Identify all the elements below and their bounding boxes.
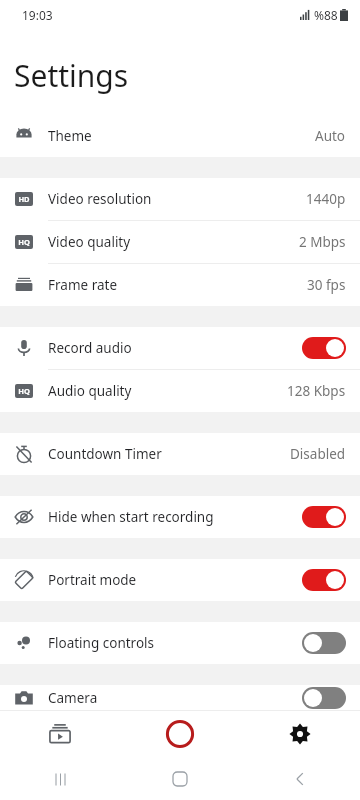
button[interactable]: Off: [302, 632, 346, 654]
staticText: %88: [314, 7, 338, 23]
button[interactable]: Recents: [36, 758, 84, 800]
staticText: HQ: [18, 237, 30, 247]
button[interactable]: Record: [154, 710, 206, 758]
button[interactable]: Off: [302, 687, 346, 709]
staticText: Theme: [48, 127, 315, 145]
staticText: 30 fps: [307, 276, 346, 294]
button[interactable]: Record audio: [0, 327, 360, 369]
staticText: 1440p: [306, 190, 346, 208]
button[interactable]: Back: [276, 758, 324, 800]
button[interactable]: Floating controls: [0, 622, 360, 664]
staticText: Audio quality: [48, 382, 287, 400]
staticText: Frame rate: [48, 276, 307, 294]
button[interactable]: Theme: [0, 115, 360, 157]
button[interactable]: On: [302, 506, 346, 528]
staticText: HQ: [18, 386, 30, 396]
staticText: HD: [18, 194, 30, 204]
staticText: Countdown Timer: [48, 445, 290, 463]
staticText: Camera: [48, 689, 302, 707]
button[interactable]: Recordings: [34, 710, 86, 758]
staticText: 2 Mbps: [299, 233, 346, 251]
staticText: Video quality: [48, 233, 299, 251]
button[interactable]: On: [302, 337, 346, 359]
staticText: Portrait mode: [48, 571, 302, 589]
button[interactable]: HD: [0, 178, 360, 220]
staticText: 128 Kbps: [287, 382, 346, 400]
button[interactable]: Home: [156, 758, 204, 800]
button[interactable]: Frame rate: [0, 264, 360, 306]
staticText: 19:03: [22, 7, 53, 23]
button[interactable]: Camera: [0, 685, 360, 710]
staticText: Settings: [14, 55, 129, 96]
button[interactable]: Hide when start recording: [0, 496, 360, 538]
button[interactable]: Portrait mode: [0, 559, 360, 601]
staticText: Video resolution: [48, 190, 306, 208]
button[interactable]: On: [302, 569, 346, 591]
staticText: Auto: [315, 127, 346, 145]
staticText: Floating controls: [48, 634, 302, 652]
button[interactable]: HQ: [0, 221, 360, 263]
staticText: Hide when start recording: [48, 508, 302, 526]
staticText: Record audio: [48, 339, 302, 357]
button[interactable]: Settings: [274, 710, 326, 758]
staticText: Disabled: [290, 445, 346, 463]
button[interactable]: Countdown Timer: [0, 433, 360, 475]
button[interactable]: HQ: [0, 370, 360, 412]
